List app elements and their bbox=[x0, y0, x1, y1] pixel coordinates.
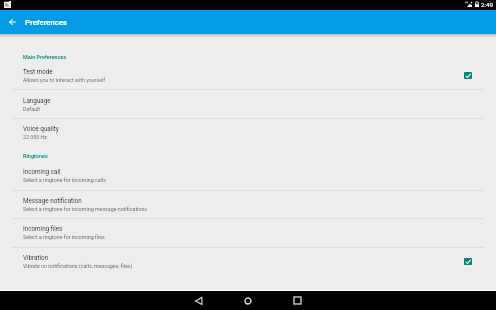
button[interactable]: Incoming call bbox=[0, 161, 496, 190]
staticText: Message notification bbox=[23, 197, 82, 204]
staticText: Vibration bbox=[23, 254, 49, 261]
staticText: Allows you to interact with yourself bbox=[23, 77, 106, 83]
button[interactable]: Vibration bbox=[0, 247, 496, 276]
button[interactable]: Voice quality bbox=[0, 118, 496, 147]
staticText: 2:49 bbox=[481, 1, 493, 8]
button[interactable]: Language bbox=[0, 90, 496, 119]
staticText: Vibrate on notifications (calls, message… bbox=[23, 263, 133, 269]
button[interactable]: Incoming files bbox=[0, 218, 496, 247]
staticText: Incoming call bbox=[23, 168, 61, 175]
button[interactable]: Navigate up bbox=[0, 10, 25, 34]
staticText: Default bbox=[23, 106, 40, 112]
staticText: Select a ringtone for incoming files bbox=[23, 234, 105, 240]
staticText: Main Preferences bbox=[23, 54, 67, 60]
staticText: Incoming files bbox=[23, 225, 63, 232]
staticText: Preferences bbox=[25, 18, 68, 27]
staticText: Select a ringtone for incoming message n… bbox=[23, 206, 148, 212]
button[interactable]: Test mode bbox=[0, 61, 496, 90]
button[interactable]: Home bbox=[236, 291, 259, 310]
staticText: Select a ringtone for incoming calls bbox=[23, 177, 106, 183]
staticText: Language bbox=[23, 97, 51, 104]
staticText: 22 050 Hz bbox=[23, 134, 47, 140]
button[interactable]: Recent apps bbox=[286, 291, 309, 310]
staticText: Voice quality bbox=[23, 125, 59, 132]
button[interactable]: Message notification bbox=[0, 190, 496, 219]
staticText: Test mode bbox=[23, 68, 53, 75]
button[interactable]: Back bbox=[187, 291, 210, 310]
staticText: Ringtones bbox=[23, 153, 48, 159]
